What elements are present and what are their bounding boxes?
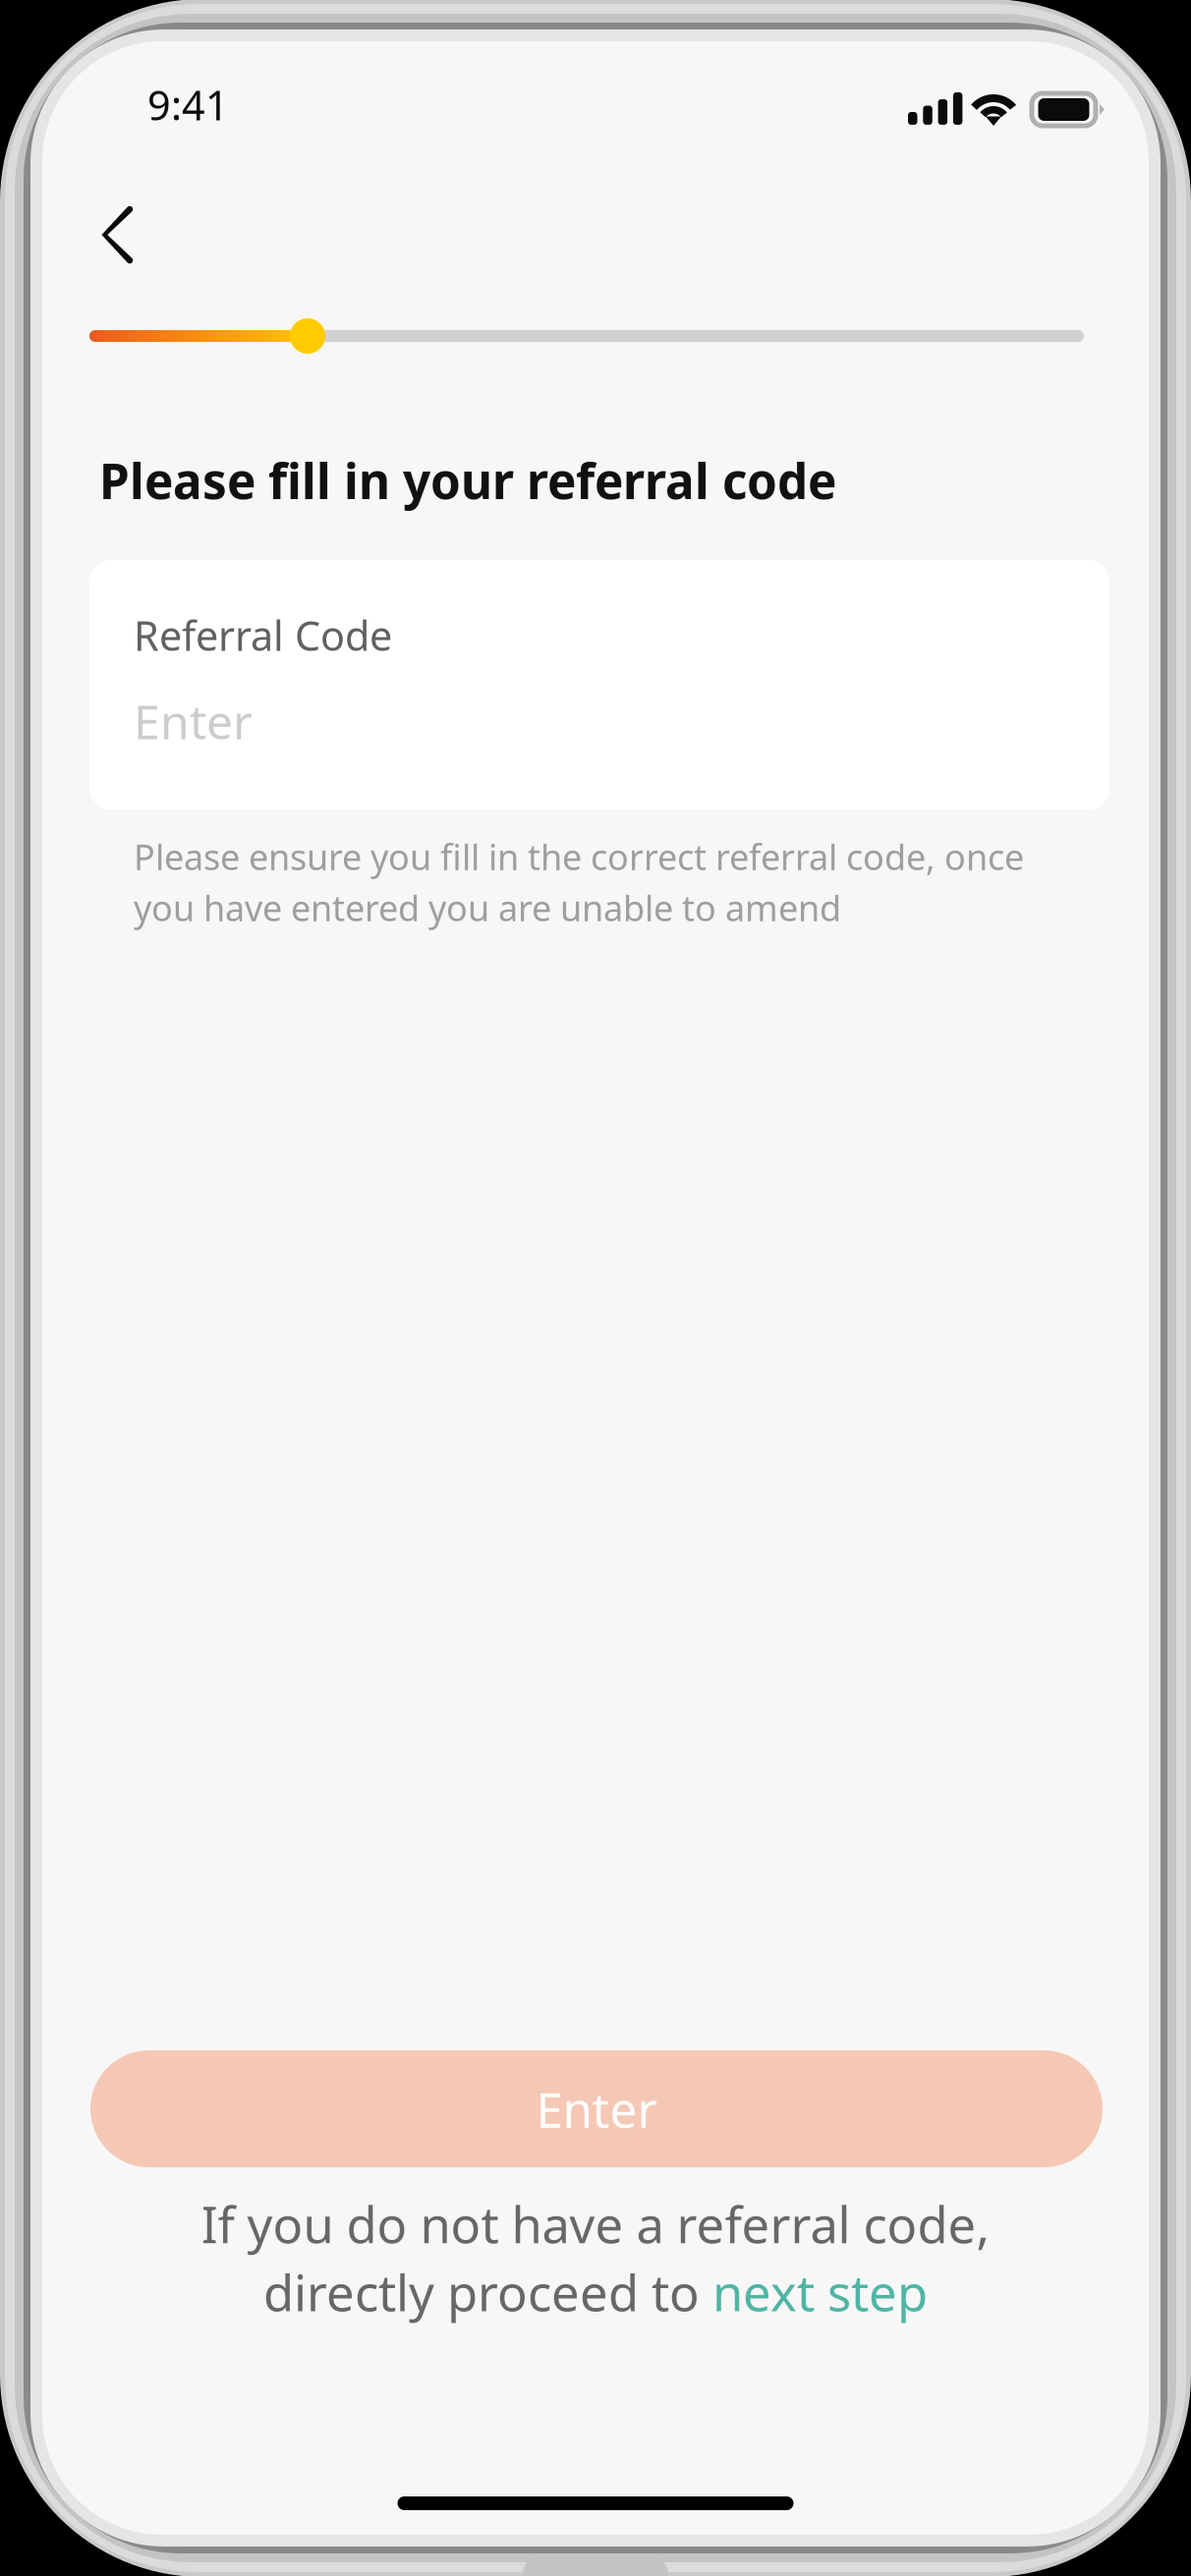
staticText: Enter bbox=[134, 690, 253, 752]
button[interactable]: Back bbox=[73, 190, 163, 280]
staticText: you have entered you are unable to amend bbox=[134, 884, 841, 931]
button[interactable]: If you do not have a referral code, bbox=[42, 2191, 1149, 2325]
staticText: Please fill in your referral code bbox=[99, 448, 836, 512]
staticText: next step bbox=[712, 2259, 928, 2325]
staticText: Enter bbox=[536, 2077, 657, 2141]
staticText: If you do not have a referral code, bbox=[201, 2191, 990, 2257]
staticText: Referral Code bbox=[134, 608, 392, 662]
staticText: 9:41 bbox=[147, 78, 229, 132]
staticText: Please ensure you fill in the correct re… bbox=[134, 833, 1024, 880]
button[interactable]: Enter bbox=[90, 2050, 1103, 2167]
staticText: directly proceed to bbox=[263, 2259, 712, 2325]
